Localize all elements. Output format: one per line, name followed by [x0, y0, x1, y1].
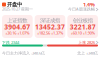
button[interactable]: 上证指数	[2, 15, 33, 38]
staticText: 上证指数	[7, 17, 27, 24]
staticText: 今日A股涨跌幅	[68, 6, 95, 12]
staticText: 1.4%	[83, 1, 95, 8]
staticText: 开盘中	[7, 1, 22, 8]
button[interactable]: 深证成指	[35, 15, 65, 38]
staticText: +182.56	[37, 30, 50, 36]
staticText: 创业板指	[73, 17, 93, 24]
button[interactable]: 开盘中	[2, 2, 33, 11]
staticText: 深证成指	[40, 17, 60, 24]
staticText: 13452.37	[35, 23, 65, 31]
button[interactable]: 下跌 2344	[2, 40, 98, 46]
staticText: +30.16	[5, 30, 16, 36]
staticText: +1.90%	[83, 30, 95, 36]
staticText: +1.07%	[17, 30, 29, 36]
staticText: 上涨 2826	[78, 40, 95, 45]
staticText: 下跌 2344	[2, 40, 19, 45]
staticText: 今日主力净流入 -348.6亿	[2, 50, 45, 56]
staticText: +1.37%	[51, 30, 63, 36]
staticText: 2025-10-27 星期一	[2, 6, 33, 12]
button[interactable]: 创业板指	[67, 15, 98, 38]
staticText: 北上 +348亿	[77, 50, 98, 56]
staticText: 3904.67	[4, 23, 30, 31]
staticText: +60.10	[71, 30, 82, 36]
button[interactable]: 1.4%	[68, 2, 98, 11]
staticText: 3221.87	[70, 23, 96, 31]
